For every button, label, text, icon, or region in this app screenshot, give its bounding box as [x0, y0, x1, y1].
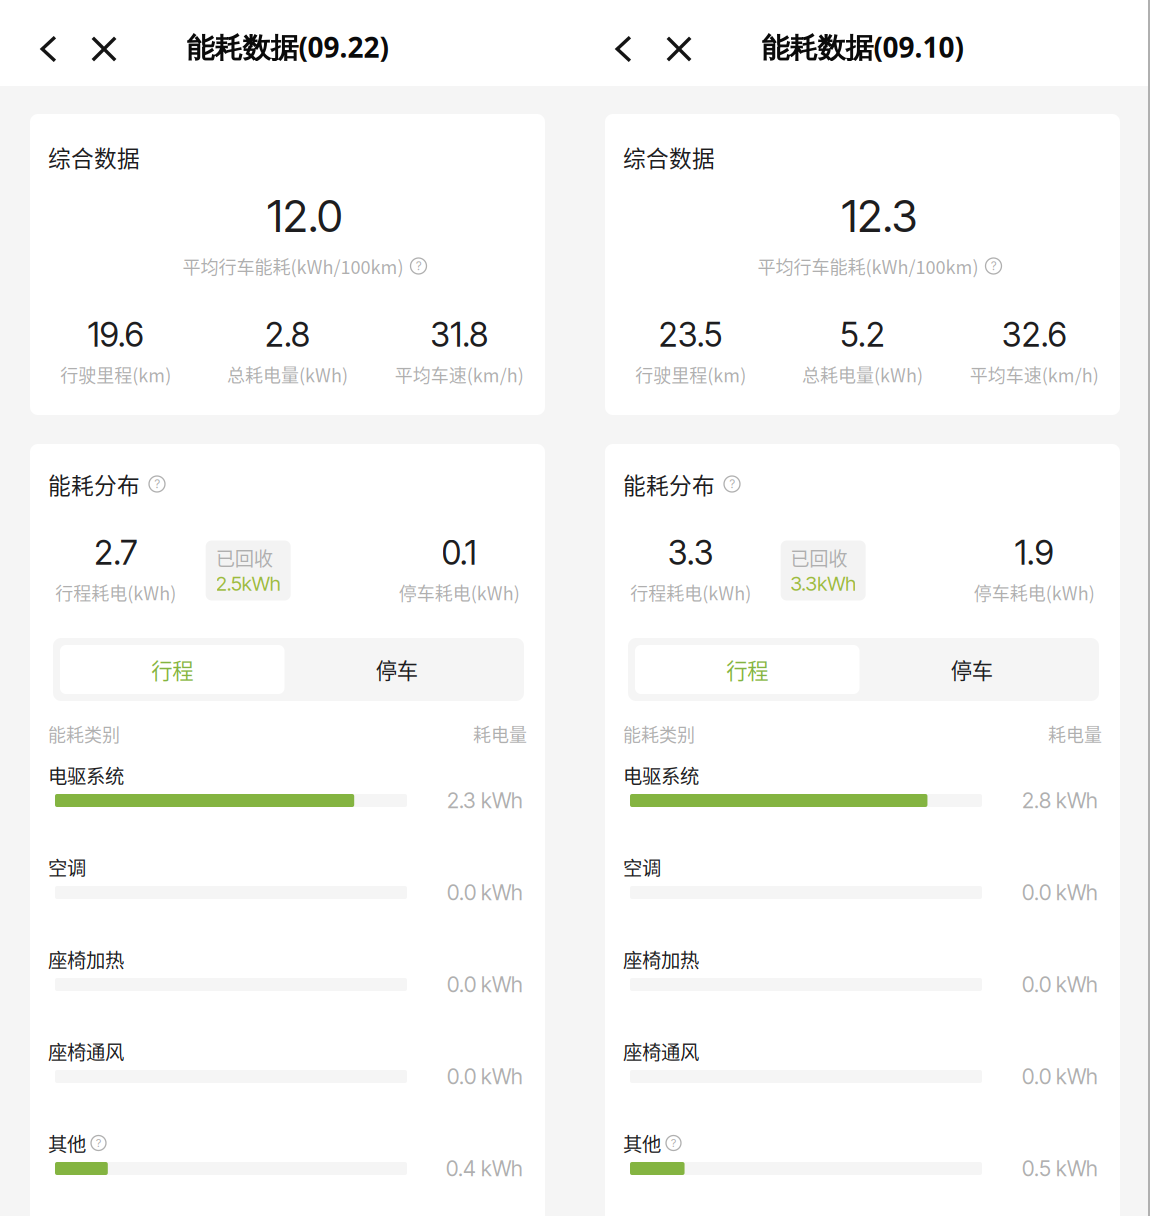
- staticText: 2.5kWh: [216, 571, 281, 596]
- staticText: 停车: [376, 654, 418, 685]
- staticText: 12.0: [267, 189, 342, 243]
- staticText: 总耗电量(kWh): [802, 361, 923, 388]
- staticText: 停车耗电(kWh): [399, 579, 520, 606]
- staticText: 空调: [48, 853, 86, 881]
- staticText: 0.0 kWh: [1022, 972, 1098, 997]
- staticText: 19.6: [88, 314, 144, 355]
- staticText: 耗电量: [473, 721, 527, 747]
- staticText: 停车: [951, 654, 993, 685]
- staticText: 综合数据: [623, 141, 715, 173]
- staticText: 能耗类别: [48, 721, 120, 747]
- staticText: 能耗数据(09.22): [186, 28, 388, 66]
- staticText: 1.9: [1015, 532, 1054, 573]
- staticText: 行程: [151, 654, 193, 685]
- staticText: 行程耗电(kWh): [55, 579, 176, 606]
- button[interactable]: 行程: [628, 638, 859, 701]
- staticText: 2.7: [94, 532, 137, 573]
- staticText: 空调: [623, 853, 661, 881]
- staticText: 2.8: [265, 314, 310, 355]
- staticText: 能耗数据(09.10): [761, 28, 963, 66]
- staticText: ?: [729, 477, 734, 491]
- staticText: 0.4 kWh: [446, 1156, 523, 1181]
- staticText: 行程: [726, 654, 768, 685]
- staticText: 已回收: [790, 543, 847, 571]
- staticText: ?: [991, 259, 996, 273]
- staticText: 32.6: [1002, 314, 1067, 355]
- staticText: 0.0 kWh: [1022, 880, 1098, 905]
- staticText: 0.1: [442, 532, 477, 573]
- staticText: 23.5: [659, 314, 723, 355]
- staticText: 31.8: [430, 314, 488, 355]
- button[interactable]: 停车: [859, 638, 1091, 701]
- staticText: ?: [416, 259, 421, 273]
- button[interactable]: Back: [595, 7, 652, 79]
- staticText: 平均行车能耗(kWh/100km): [757, 253, 978, 279]
- staticText: 综合数据: [48, 141, 140, 173]
- staticText: 其他: [623, 1129, 661, 1157]
- staticText: ?: [671, 1136, 676, 1150]
- staticText: 12.3: [841, 189, 917, 243]
- staticText: 行程耗电(kWh): [630, 579, 751, 606]
- button[interactable]: Close: [77, 7, 131, 79]
- button[interactable]: 行程: [53, 638, 284, 701]
- staticText: 已回收: [216, 543, 273, 571]
- button[interactable]: Close: [652, 7, 706, 79]
- staticText: 能耗分布: [48, 468, 140, 500]
- staticText: 座椅加热: [623, 945, 699, 973]
- staticText: ?: [154, 477, 159, 491]
- staticText: 3.3: [668, 532, 714, 573]
- staticText: 2.3 kWh: [447, 788, 523, 813]
- staticText: 耗电量: [1048, 721, 1102, 747]
- staticText: ?: [96, 1136, 101, 1150]
- staticText: 座椅加热: [48, 945, 124, 973]
- staticText: 0.0 kWh: [447, 880, 523, 905]
- staticText: 座椅通风: [623, 1037, 699, 1065]
- staticText: 其他: [48, 1129, 86, 1157]
- staticText: 行驶里程(km): [60, 361, 171, 388]
- staticText: 电驱系统: [48, 761, 124, 789]
- staticText: 0.0 kWh: [447, 972, 523, 997]
- staticText: 电驱系统: [623, 761, 699, 789]
- staticText: 0.0 kWh: [447, 1064, 523, 1089]
- staticText: 平均行车能耗(kWh/100km): [182, 253, 403, 279]
- staticText: 0.5 kWh: [1022, 1156, 1098, 1181]
- staticText: 0.0 kWh: [1022, 1064, 1098, 1089]
- staticText: 3.3kWh: [790, 571, 856, 596]
- staticText: 总耗电量(kWh): [227, 361, 348, 388]
- staticText: 平均车速(km/h): [970, 361, 1099, 388]
- staticText: 行驶里程(km): [635, 361, 746, 388]
- staticText: 能耗分布: [623, 468, 715, 500]
- button[interactable]: Back: [20, 7, 77, 79]
- staticText: 2.8 kWh: [1022, 788, 1098, 813]
- staticText: 座椅通风: [48, 1037, 124, 1065]
- staticText: 停车耗电(kWh): [974, 579, 1095, 606]
- staticText: 平均车速(km/h): [395, 361, 524, 388]
- staticText: 5.2: [840, 314, 885, 355]
- staticText: 能耗类别: [623, 721, 695, 747]
- button[interactable]: 停车: [284, 638, 516, 701]
